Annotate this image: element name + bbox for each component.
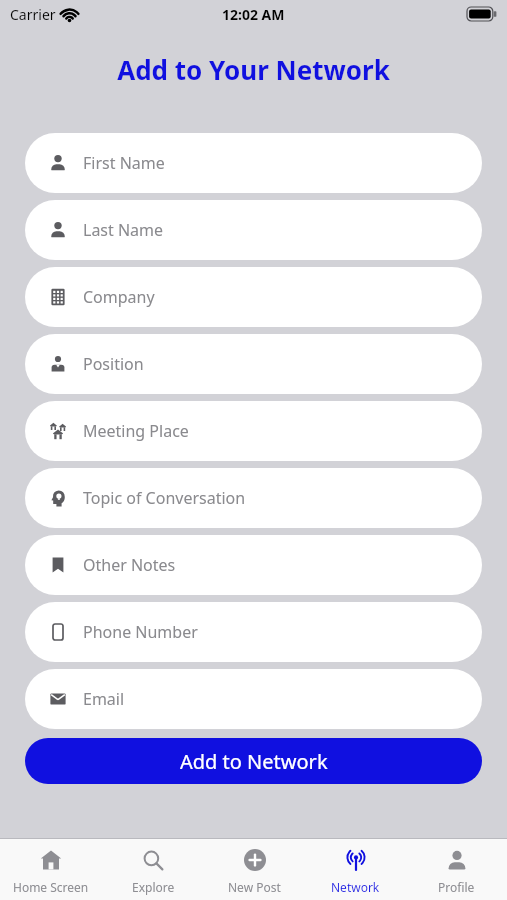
button[interactable]: New Post xyxy=(204,839,305,900)
staticText: Email xyxy=(83,688,125,710)
button[interactable]: Topic of Conversation xyxy=(25,468,482,528)
button[interactable]: Network xyxy=(305,839,406,900)
button[interactable]: Email xyxy=(25,669,482,729)
staticText: Other Notes xyxy=(83,554,176,576)
staticText: 12:02 AM xyxy=(222,5,285,24)
button[interactable]: Meeting Place xyxy=(25,401,482,461)
staticText: Network xyxy=(331,879,380,895)
button[interactable]: Position xyxy=(25,334,482,394)
button[interactable]: Explore xyxy=(102,839,204,900)
button[interactable]: Other Notes xyxy=(25,535,482,595)
button[interactable]: Home Screen xyxy=(0,839,102,900)
staticText: Carrier xyxy=(10,5,56,24)
staticText: Meeting Place xyxy=(83,420,189,442)
button[interactable]: Add to Network xyxy=(25,738,482,784)
staticText: Company xyxy=(83,286,155,308)
button[interactable]: Company xyxy=(25,267,482,327)
staticText: Profile xyxy=(438,879,475,895)
staticText: Position xyxy=(83,353,144,375)
staticText: First Name xyxy=(83,152,165,174)
button[interactable]: First Name xyxy=(25,133,482,193)
button[interactable]: Phone Number xyxy=(25,602,482,662)
button[interactable]: Last Name xyxy=(25,200,482,260)
staticText: Add to Network xyxy=(180,748,328,775)
staticText: Topic of Conversation xyxy=(83,487,246,509)
staticText: Add to Your Network xyxy=(0,52,507,87)
staticText: Phone Number xyxy=(83,621,198,643)
staticText: Last Name xyxy=(83,219,164,241)
staticText: Home Screen xyxy=(13,879,89,895)
staticText: New Post xyxy=(228,879,281,895)
button[interactable]: Profile xyxy=(406,839,507,900)
staticText: Explore xyxy=(132,879,175,895)
